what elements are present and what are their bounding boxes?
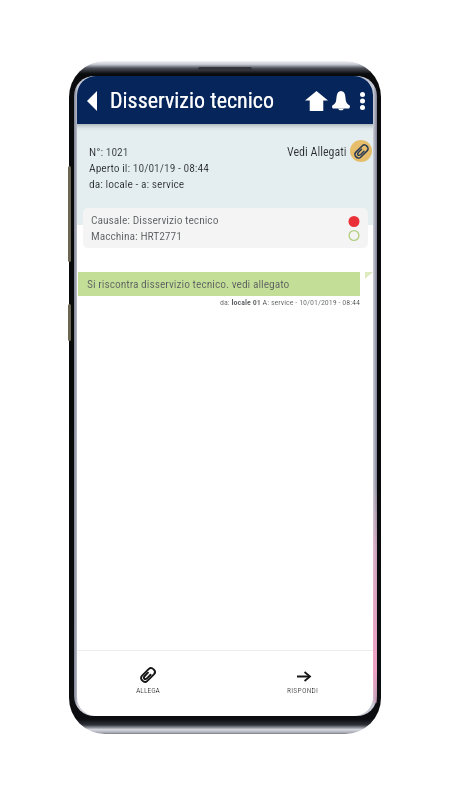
button[interactable]: ALLEGA (108, 651, 188, 715)
staticText: Disservizio tecnico (110, 88, 275, 114)
staticText: Causale: Disservizio tecnico (91, 213, 219, 226)
button[interactable]: RISPONDI (263, 651, 343, 715)
button[interactable]: Home (300, 83, 332, 118)
button[interactable]: Indietro (77, 83, 107, 118)
staticText: Si riscontra disservizio tecnico. vedi a… (87, 277, 290, 290)
button[interactable]: Vedi Allegati (287, 140, 372, 162)
staticText: Macchina: HRT2771 (91, 229, 182, 242)
staticText: Vedi Allegati (287, 145, 347, 159)
staticText: da: locale 01 A: service - 10/01/2019 - … (220, 298, 360, 307)
staticText: ALLEGA (136, 686, 160, 695)
staticText: N°: 1021 (89, 145, 129, 158)
button[interactable]: Notifiche (325, 83, 356, 118)
staticText: da: locale - a: service (89, 177, 185, 190)
button[interactable]: Altre opzioni (350, 84, 373, 117)
button[interactable]: Causale: Disservizio tecnico (83, 208, 368, 248)
staticText: RISPONDI (287, 686, 319, 695)
staticText: Aperto il: 10/01/19 - 08:44 (89, 161, 209, 174)
button[interactable]: Si riscontra disservizio tecnico. vedi a… (78, 272, 360, 296)
